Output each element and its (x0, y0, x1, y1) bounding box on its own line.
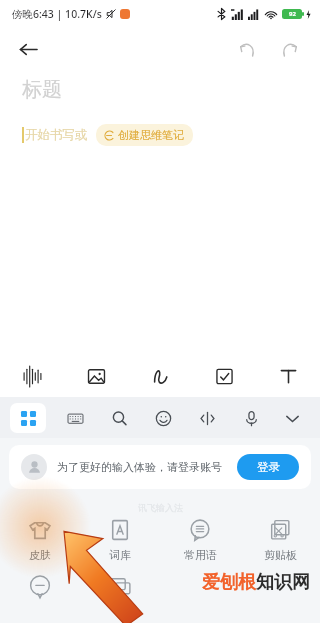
button[interactable]: Panel (10, 403, 46, 433)
staticText: 剪贴板 (264, 548, 297, 562)
button[interactable]: Item 2 (80, 571, 160, 623)
button[interactable]: 词库 (80, 514, 160, 565)
button[interactable]: Cursor (188, 402, 226, 434)
staticText: 知识网 (256, 571, 310, 594)
staticText: 开始书写或 (25, 127, 88, 143)
staticText: 92 (289, 10, 296, 18)
button[interactable]: Voice input (232, 402, 270, 434)
button[interactable]: 剪贴板 (240, 514, 320, 565)
staticText: 皮肤 (29, 548, 51, 562)
button[interactable]: Image (64, 355, 128, 397)
button[interactable]: Redo (272, 32, 306, 66)
button[interactable]: 为了更好的输入体验，请登录账号 (9, 445, 311, 489)
button[interactable]: 创建思维笔记 (96, 124, 193, 146)
staticText: 为了更好的输入体验，请登录账号 (57, 460, 222, 474)
button[interactable]: 常用语 (160, 514, 240, 565)
button[interactable]: Undo (230, 32, 264, 66)
button[interactable]: Draw (128, 355, 192, 397)
button[interactable]: Text format (256, 355, 320, 397)
staticText: 爱刨根 (202, 571, 256, 594)
staticText: 常用语 (184, 548, 217, 562)
button[interactable]: Back (10, 31, 46, 67)
staticText: 词库 (109, 548, 131, 562)
button[interactable]: Hide keyboard (272, 402, 312, 434)
staticText: 讯飞输入法 (138, 502, 183, 513)
button[interactable]: 皮肤 (0, 514, 80, 565)
button[interactable]: Item 3 (160, 571, 240, 623)
button[interactable]: Voice (0, 355, 64, 397)
button[interactable]: Item 1 (0, 571, 80, 623)
button[interactable]: Search (100, 402, 138, 434)
staticText (119, 605, 122, 620)
button[interactable]: 登录 (237, 454, 299, 480)
staticText: 创建思维笔记 (118, 128, 184, 142)
button[interactable]: Keyboard (56, 402, 94, 434)
staticText: 登录 (257, 460, 280, 474)
button[interactable]: Checklist (192, 355, 256, 397)
button[interactable]: Item 4 (240, 571, 320, 623)
staticText: 标题 (22, 77, 62, 102)
staticText: 傍晚6:43 | 10.7K/s (12, 7, 102, 21)
button[interactable]: Emoji (144, 402, 182, 434)
